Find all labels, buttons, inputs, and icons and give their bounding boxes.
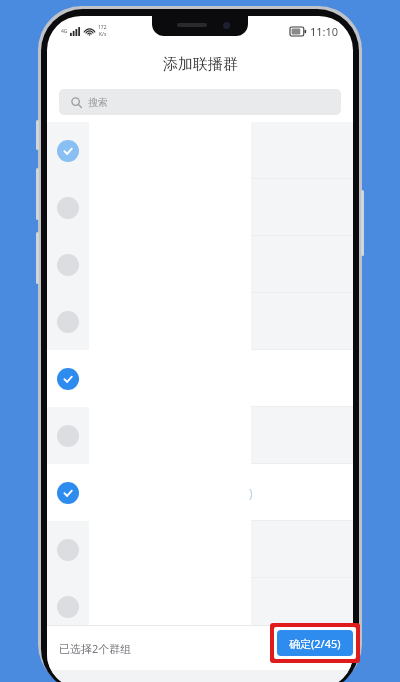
staticText: 11:10 [310, 24, 339, 39]
button[interactable]: 已选中 [47, 122, 353, 179]
button[interactable]: 已选中 [47, 464, 353, 521]
button[interactable]: 未选中 [47, 578, 353, 635]
button[interactable]: 未选中 [57, 596, 79, 618]
staticText: ) [249, 485, 253, 501]
button[interactable]: 已选中 [47, 350, 353, 407]
button[interactable]: 确定(2/45) [277, 630, 353, 656]
button[interactable]: 未选中 [47, 407, 353, 464]
staticText: 已选择2个群组 [59, 641, 132, 656]
staticText: 搜索 [88, 96, 108, 109]
button[interactable]: 已选中 [57, 140, 79, 162]
button[interactable]: 未选中 [57, 197, 79, 219]
button[interactable]: 已选中 [57, 482, 79, 504]
button[interactable]: 未选中 [57, 311, 79, 333]
staticText: K/s [99, 31, 107, 38]
button[interactable]: 未选中 [47, 293, 353, 350]
button[interactable]: 未选中 [47, 236, 353, 293]
staticText: 172 [98, 24, 107, 31]
button[interactable]: 未选中 [57, 254, 79, 276]
button[interactable]: 未选中 [47, 521, 353, 578]
staticText: 确定(2/45) [289, 636, 341, 651]
staticText: 4G [61, 28, 68, 35]
staticText: 添加联播群 [163, 55, 238, 74]
button[interactable]: 搜索 [59, 89, 341, 115]
button[interactable]: 未选中 [57, 425, 79, 447]
button[interactable]: 未选中 [57, 539, 79, 561]
button[interactable]: 未选中 [47, 179, 353, 236]
button[interactable]: 已选中 [57, 368, 79, 390]
